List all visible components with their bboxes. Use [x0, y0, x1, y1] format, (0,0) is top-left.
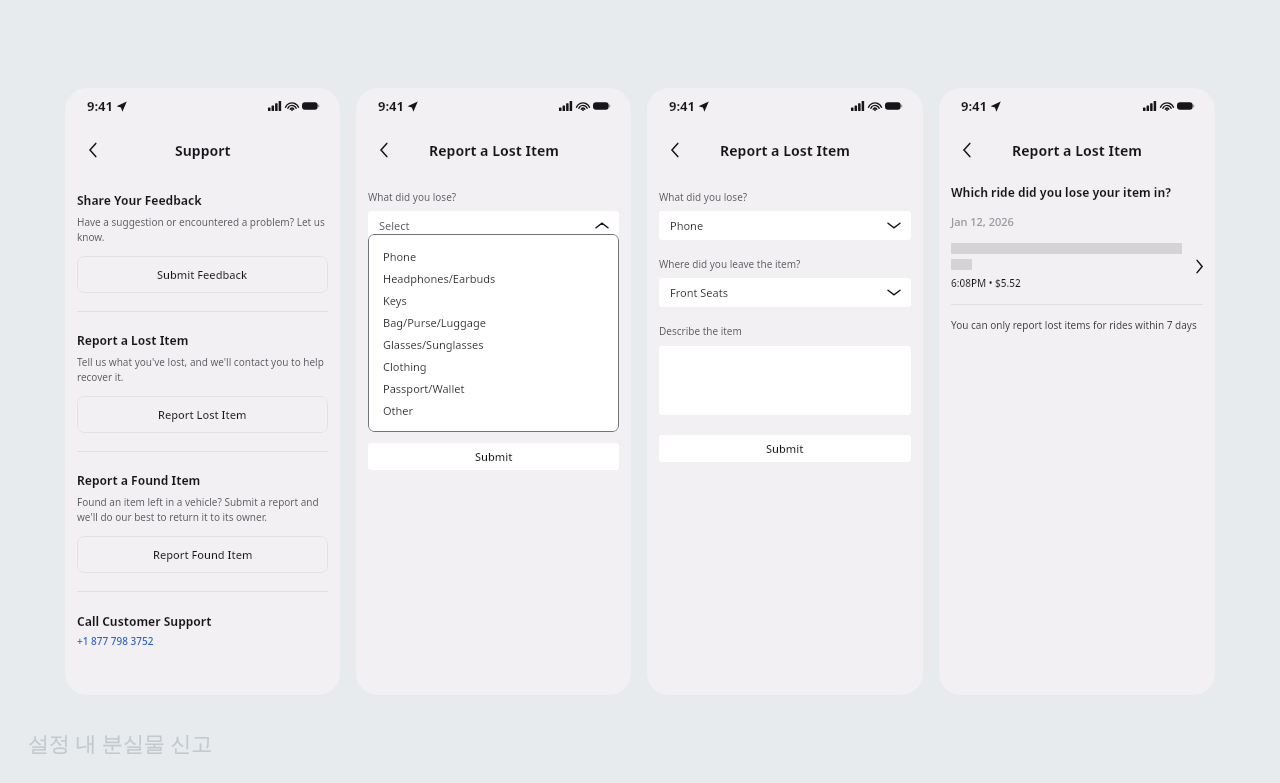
- button[interactable]: Select: [368, 211, 619, 240]
- button[interactable]: Back: [952, 135, 982, 165]
- staticText: Glasses/Sunglasses: [383, 337, 484, 352]
- button[interactable]: Back: [660, 135, 690, 165]
- staticText: Describe the item: [659, 324, 742, 338]
- staticText: Report a Lost Item: [720, 141, 850, 160]
- button[interactable]: Headphones/Earbuds: [368, 267, 619, 289]
- staticText: Bag/Purse/Luggage: [383, 315, 486, 330]
- staticText: You can only report lost items for rides…: [951, 318, 1197, 332]
- button[interactable]: Clothing: [368, 355, 619, 377]
- button[interactable]: Back: [369, 135, 399, 165]
- button[interactable]: Other: [368, 399, 619, 421]
- staticText: Other: [383, 403, 414, 418]
- button[interactable]: Bag/Purse/Luggage: [368, 311, 619, 333]
- staticText: Phone: [383, 249, 417, 264]
- staticText: 6:08PM • $5.52: [951, 276, 1021, 290]
- staticText: Submit: [766, 441, 804, 456]
- staticText: 9:41: [961, 97, 987, 115]
- staticText: Report a Lost Item: [1012, 141, 1142, 160]
- staticText: Passport/Wallet: [383, 381, 465, 396]
- button[interactable]: Passport/Wallet: [368, 377, 619, 399]
- button[interactable]: Phone: [368, 245, 619, 267]
- button[interactable]: Report Lost Item: [77, 396, 328, 433]
- staticText: Clothing: [383, 359, 427, 374]
- staticText: Share Your Feedback: [77, 192, 202, 208]
- button[interactable]: +1 877 798 3752: [77, 634, 154, 648]
- staticText: Report Lost Item: [158, 407, 247, 422]
- button[interactable]: Glasses/Sunglasses: [368, 333, 619, 355]
- staticText: 9:41: [378, 97, 404, 115]
- staticText: Support: [175, 141, 231, 160]
- staticText: Found an item left in a vehicle? Submit …: [77, 495, 328, 524]
- staticText: Call Customer Support: [77, 613, 212, 629]
- staticText: Submit: [475, 449, 513, 464]
- staticText: Submit Feedback: [157, 267, 248, 282]
- staticText: Phone: [670, 218, 704, 233]
- staticText: Select: [379, 218, 410, 233]
- staticText: 9:41: [87, 97, 113, 115]
- staticText: +1 877 798 3752: [77, 634, 154, 648]
- staticText: Where did you leave the item?: [659, 257, 801, 271]
- button[interactable]: Back: [78, 135, 108, 165]
- button[interactable]: Submit: [659, 435, 911, 462]
- staticText: Headphones/Earbuds: [383, 271, 496, 286]
- staticText: 9:41: [669, 97, 695, 115]
- button[interactable]: Report Found Item: [77, 536, 328, 573]
- button[interactable]: Front Seats: [659, 278, 911, 307]
- staticText: Report Found Item: [153, 547, 253, 562]
- staticText: What did you lose?: [368, 190, 457, 204]
- button[interactable]: Submit: [368, 443, 619, 470]
- staticText: Front Seats: [670, 285, 728, 300]
- staticText: 설정 내 분실물 신고: [28, 729, 213, 758]
- button[interactable]: Keys: [368, 289, 619, 311]
- button[interactable]: Phone: [659, 211, 911, 240]
- staticText: Tell us what you've lost, and we'll cont…: [77, 355, 328, 384]
- staticText: Have a suggestion or encountered a probl…: [77, 215, 328, 244]
- staticText: Report a Lost Item: [429, 141, 559, 160]
- staticText: Report a Lost Item: [77, 332, 189, 348]
- button[interactable]: 6:08PM • $5.52: [951, 243, 1203, 290]
- staticText: Report a Found Item: [77, 472, 201, 488]
- staticText: What did you lose?: [659, 190, 748, 204]
- staticText: Jan 12, 2026: [951, 214, 1014, 229]
- staticText: Keys: [383, 293, 407, 308]
- button[interactable]: Submit Feedback: [77, 256, 328, 293]
- staticText: Which ride did you lose your item in?: [951, 184, 1171, 200]
